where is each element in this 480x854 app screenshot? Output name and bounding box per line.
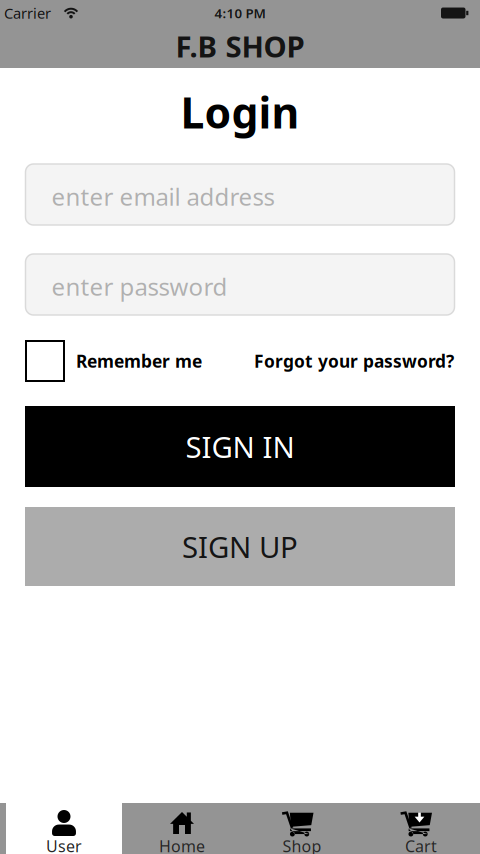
staticText: enter email address: [51, 181, 274, 212]
button[interactable]: SIGN UP: [25, 507, 455, 586]
button[interactable]: enter password: [25, 254, 454, 315]
staticText: SIGN IN: [185, 427, 294, 466]
staticText: Home: [159, 835, 205, 854]
button[interactable]: Forgot your password?: [254, 349, 454, 372]
staticText: Login: [180, 84, 299, 140]
button[interactable]: User: [6, 803, 122, 854]
staticText: 4:10 PM: [214, 4, 265, 22]
staticText: Forgot your password?: [254, 349, 454, 372]
button[interactable]: SIGN IN: [25, 406, 455, 487]
staticText: User: [46, 835, 82, 854]
staticText: F.B SHOP: [175, 26, 304, 65]
button[interactable]: enter email address: [25, 164, 454, 225]
staticText: Shop: [282, 835, 321, 854]
staticText: enter password: [51, 271, 227, 302]
button[interactable]: Remember me: [26, 341, 202, 381]
staticText: Cart: [405, 835, 437, 854]
button[interactable]: Home: [122, 803, 242, 854]
button[interactable]: Shop: [242, 803, 362, 854]
staticText: SIGN UP: [182, 527, 298, 566]
staticText: Remember me: [76, 349, 202, 372]
staticText: Carrier: [4, 3, 51, 23]
button[interactable]: Cart: [362, 803, 480, 854]
